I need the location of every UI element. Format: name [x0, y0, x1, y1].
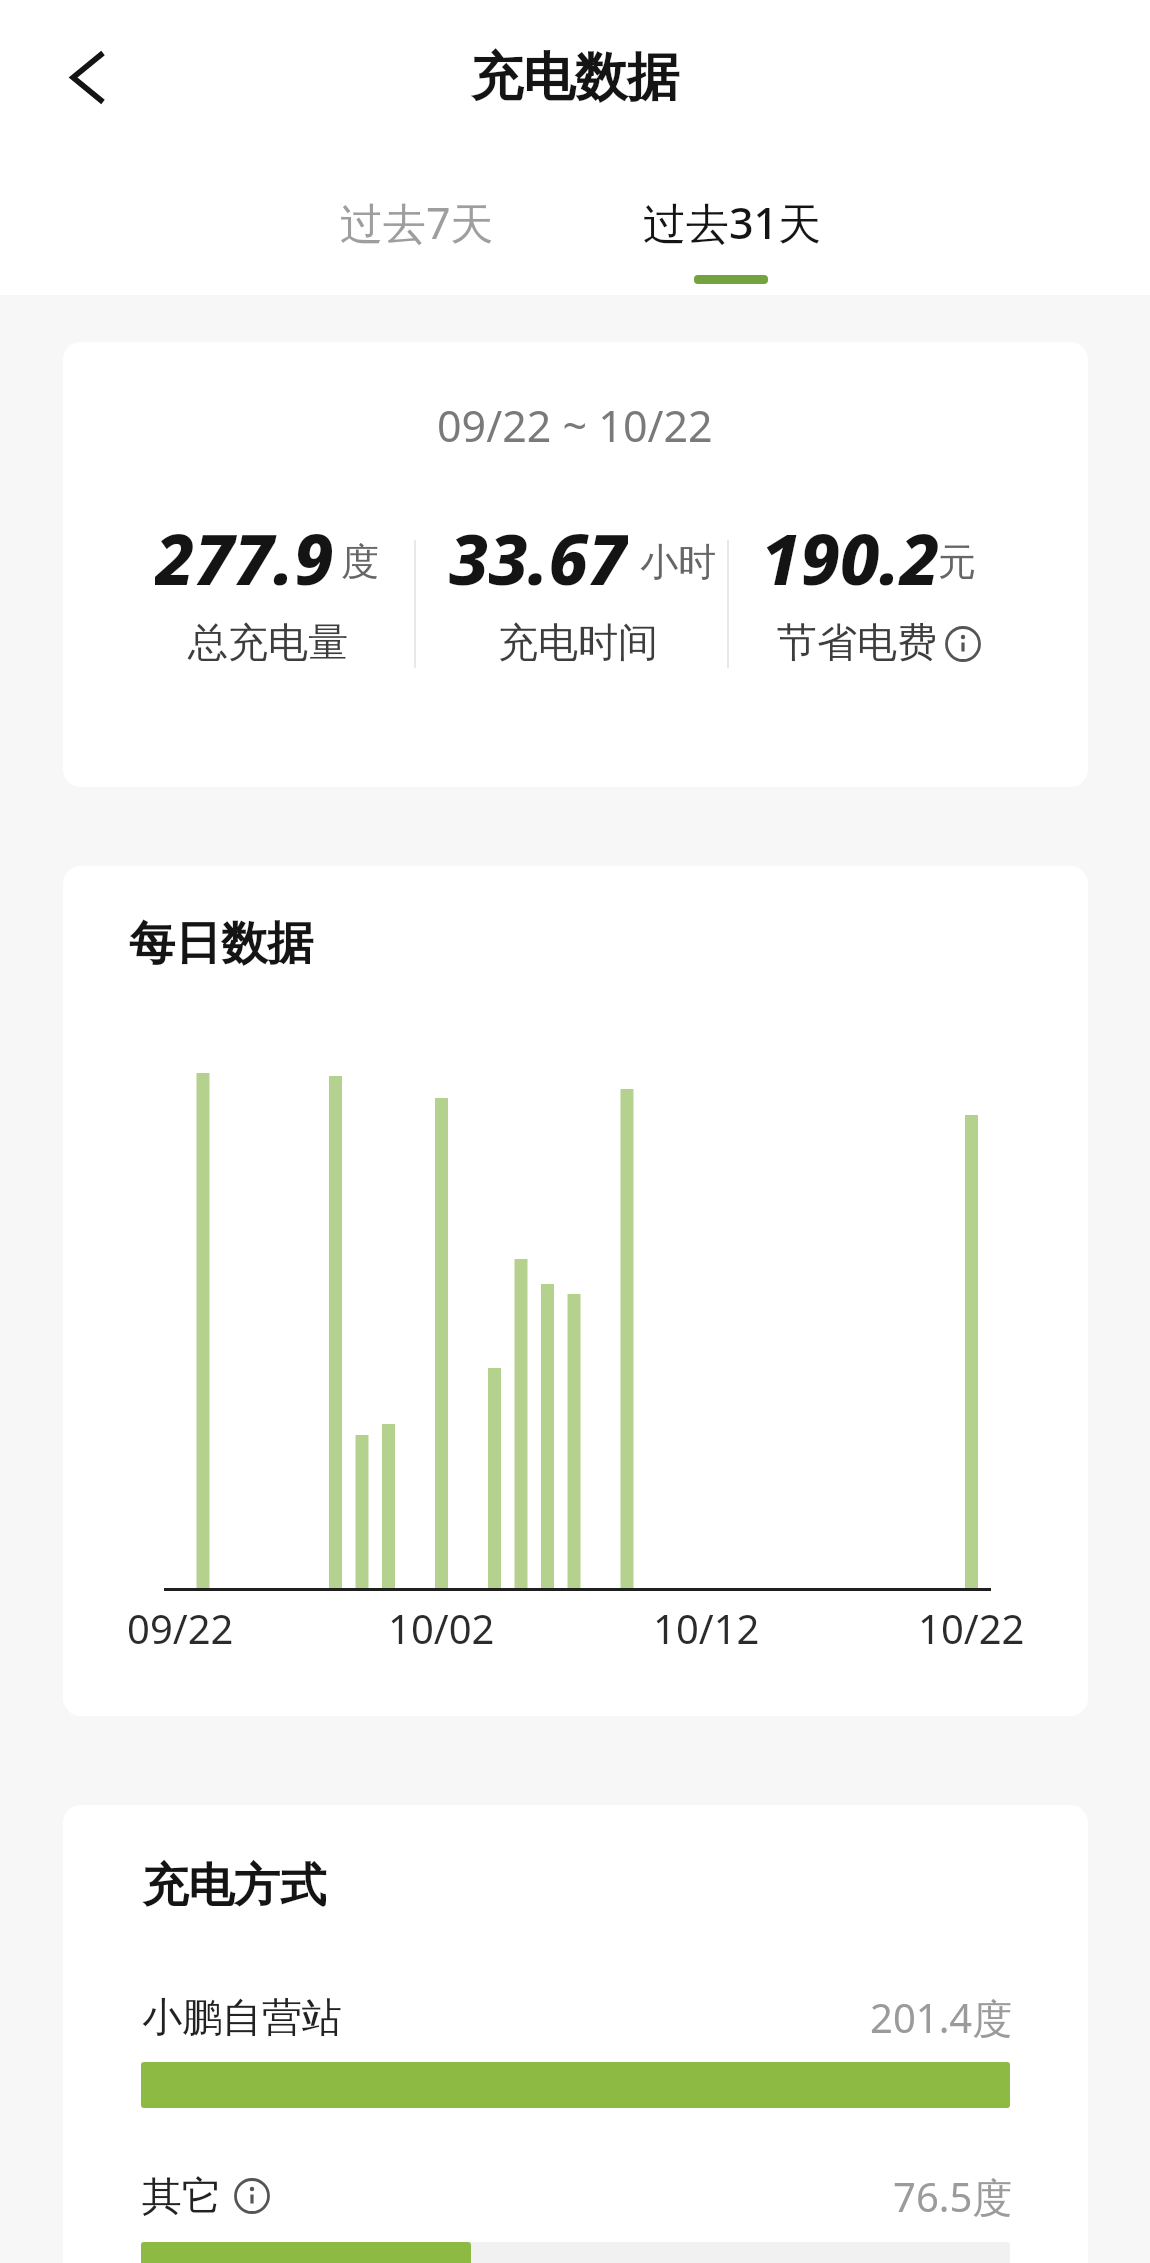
staticText: 33.67 — [449, 510, 628, 600]
button[interactable] — [40, 45, 106, 111]
staticText: 充电方式 — [142, 1857, 326, 1915]
staticText: 10/22 — [918, 1601, 1025, 1655]
staticText: 充电时间 — [498, 617, 658, 667]
staticText: 元 — [938, 538, 976, 586]
staticText: 10/02 — [388, 1601, 495, 1655]
staticText: 其它 — [142, 2171, 222, 2221]
staticText: 09/22 ~ 10/22 — [437, 396, 713, 455]
staticText: 节省电费 — [777, 617, 937, 667]
staticText: 190.2 — [761, 510, 940, 600]
staticText: 充电数据 — [471, 45, 679, 111]
staticText: 小时 — [640, 538, 716, 586]
staticText: 过去31天 — [643, 193, 822, 252]
button[interactable]: 过去31天 — [622, 167, 842, 277]
button[interactable] — [141, 2170, 1010, 2263]
staticText: 度 — [341, 538, 379, 586]
button[interactable] — [141, 1990, 1010, 2110]
staticText: 201.4度 — [870, 1990, 1013, 2045]
staticText: 总充电量 — [188, 617, 348, 667]
staticText: 09/22 — [127, 1601, 234, 1655]
staticText: 每日数据 — [129, 915, 313, 973]
staticText: 277.9 — [155, 510, 334, 600]
button[interactable] — [943, 624, 983, 664]
staticText: 10/12 — [653, 1601, 760, 1655]
staticText: 76.5度 — [893, 2169, 1013, 2224]
staticText: 小鹏自营站 — [142, 1992, 342, 2042]
button[interactable] — [232, 2176, 272, 2216]
staticText: 过去7天 — [340, 193, 494, 252]
button[interactable]: 过去7天 — [307, 167, 527, 277]
